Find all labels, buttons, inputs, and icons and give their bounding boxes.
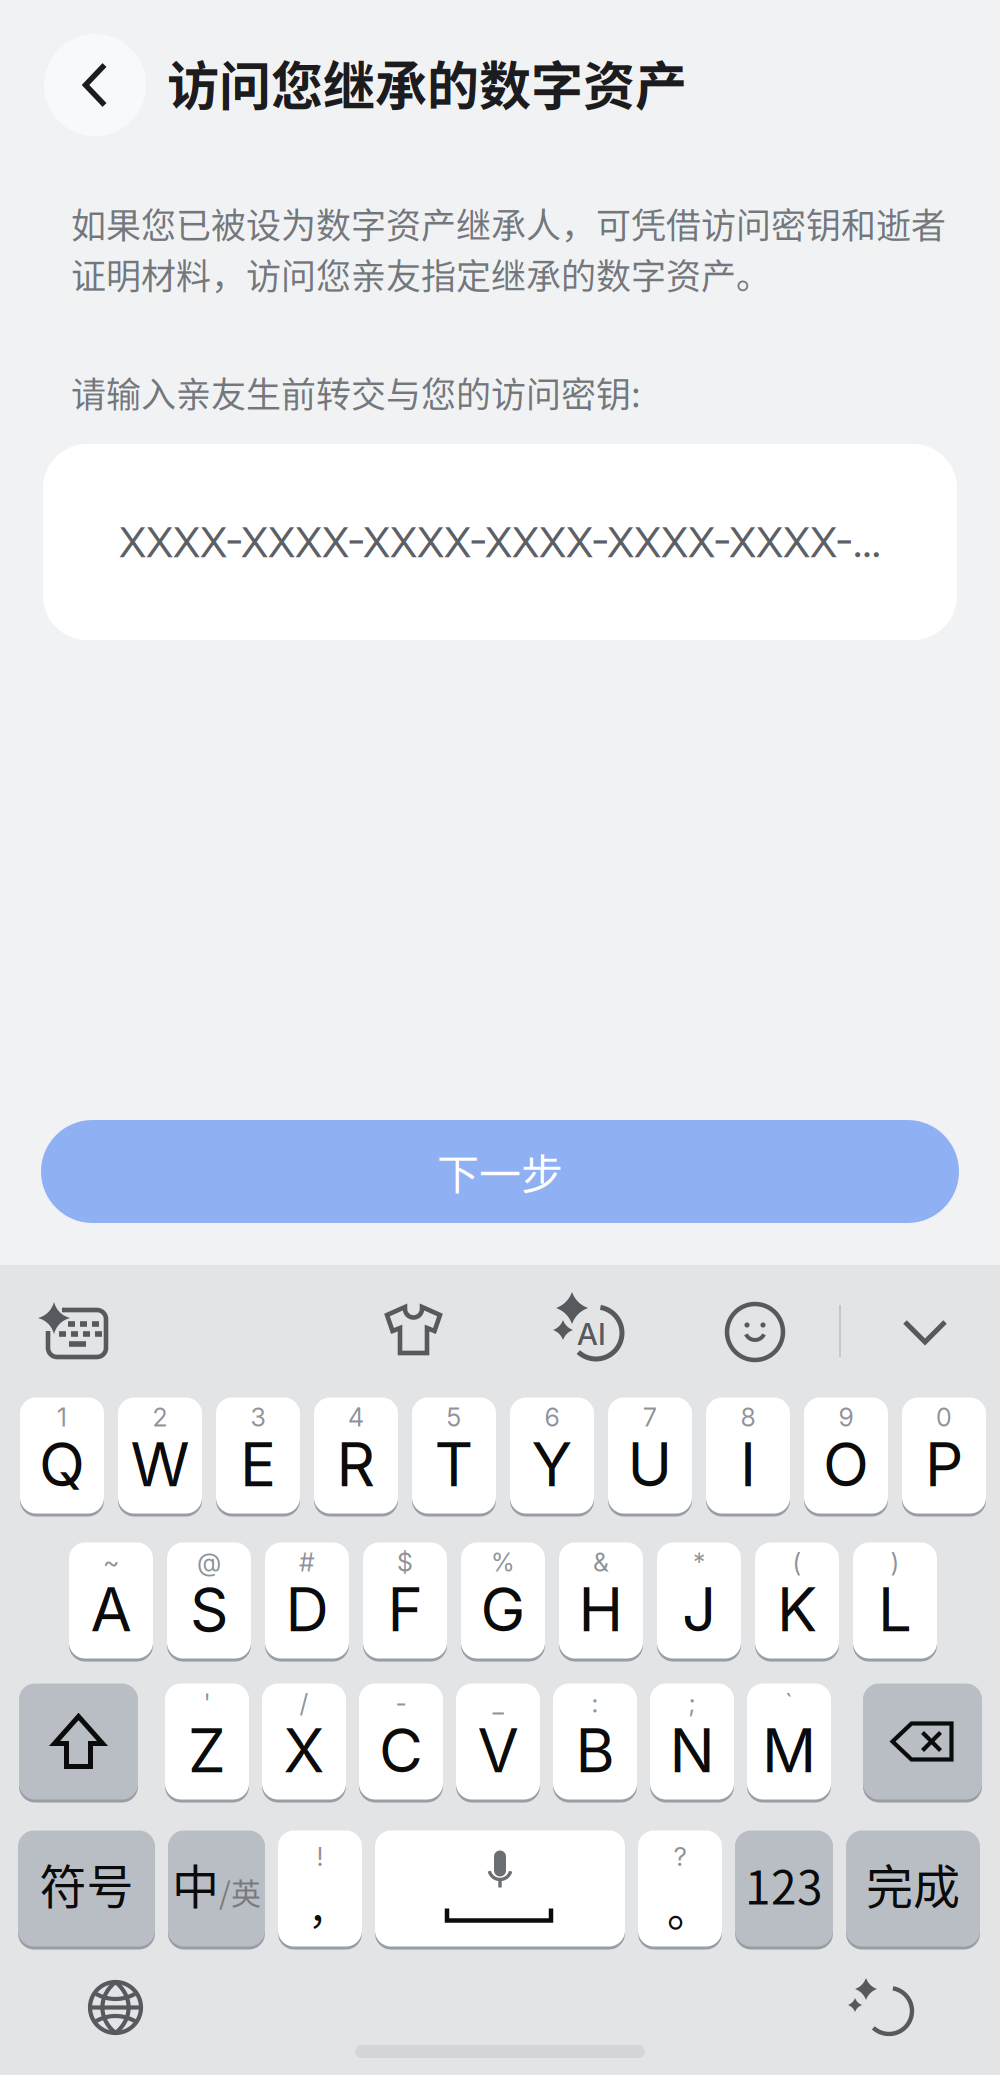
staticText: ! [316,1841,323,1872]
button[interactable]: ; [650,1682,734,1801]
staticText: ? [673,1841,686,1872]
staticText: 1 [57,1402,67,1433]
staticText: 8 [740,1402,755,1433]
staticText: W [130,1428,189,1501]
button[interactable]: 5 [412,1396,496,1515]
button[interactable]: * [657,1541,741,1660]
staticText: XXXX-XXXX-XXXX-XXXX-XXXX-XXXX-… [119,517,881,567]
staticText: D [285,1573,328,1646]
button[interactable]: Hide keyboard [902,1314,948,1350]
button[interactable] [375,1829,625,1948]
button[interactable]: 0 [902,1396,986,1515]
staticText: 123 [745,1851,823,1918]
staticText: 访问您继承的数字资产 [167,45,687,120]
button[interactable]: ( [755,1541,839,1660]
staticText: B [575,1714,614,1787]
button[interactable]: 4 [314,1396,398,1515]
button[interactable]: Emoji [727,1304,783,1360]
button[interactable]: 9 [804,1396,888,1515]
staticText: - [395,1688,406,1719]
button[interactable]: : [553,1682,637,1801]
staticText: / [299,1688,308,1719]
staticText: 0 [936,1402,952,1433]
button[interactable]: ~ [69,1541,153,1660]
button[interactable]: 1 [20,1396,104,1515]
staticText: G [480,1573,525,1646]
staticText: _ [492,1688,503,1719]
button[interactable]: AI suggestions [852,1983,916,2039]
staticText: % [491,1547,515,1578]
staticText: ~ [103,1547,119,1578]
staticText: ) [890,1547,899,1578]
staticText: T [434,1428,473,1501]
button[interactable]: 符号 [18,1829,155,1948]
button[interactable]: ! [278,1829,362,1948]
button[interactable]: Smart keyboard [34,1301,110,1361]
button[interactable]: $ [363,1541,447,1660]
staticText: P [925,1428,963,1501]
button[interactable]: 下一步 [41,1120,959,1223]
staticText: 请输入亲友生前转交与您的访问密钥: [71,367,641,418]
staticText: Z [188,1714,226,1787]
button[interactable]: 7 [608,1396,692,1515]
button[interactable]: 8 [706,1396,790,1515]
button[interactable]: # [265,1541,349,1660]
staticText: X [283,1714,324,1787]
button[interactable]: _ [456,1682,540,1801]
button[interactable] [19,1682,138,1801]
staticText: 5 [446,1402,461,1433]
button[interactable]: - [359,1682,443,1801]
staticText: ; [688,1688,695,1719]
button[interactable]: @ [167,1541,251,1660]
staticText: H [578,1573,623,1646]
staticText: M [762,1714,816,1787]
button[interactable]: ? [638,1829,722,1948]
staticText: 3 [250,1402,265,1433]
staticText: 9 [838,1402,853,1433]
staticText: F [387,1573,422,1646]
staticText: O [823,1428,869,1501]
button[interactable]: Stickers [383,1303,444,1357]
staticText: C [379,1714,423,1787]
button[interactable]: % [461,1541,545,1660]
staticText: 下一步 [437,1141,563,1202]
staticText: ' [203,1688,210,1719]
button[interactable]: 123 [735,1829,833,1948]
staticText: /英 [219,1870,261,1913]
button[interactable]: AI [552,1293,628,1365]
button[interactable]: 2 [118,1396,202,1515]
staticText: J [682,1573,716,1646]
staticText: & [593,1547,609,1578]
staticText: 4 [348,1402,364,1433]
staticText: E [240,1428,276,1501]
staticText: I [740,1428,756,1501]
button[interactable]: 完成 [846,1829,980,1948]
button[interactable]: ` [747,1682,831,1801]
staticText: V [477,1714,518,1787]
button[interactable]: ' [165,1682,249,1801]
staticText: 中 [172,1849,219,1918]
button[interactable]: Switch language [90,1982,141,2033]
button[interactable] [863,1682,982,1801]
staticText: ` [785,1688,793,1719]
staticText: S [190,1573,228,1646]
staticText: R [336,1428,375,1501]
button[interactable]: ) [853,1541,937,1660]
staticText: ( [792,1547,801,1578]
staticText: U [627,1428,672,1501]
staticText: AI [577,1316,606,1352]
button[interactable]: 中 [168,1829,265,1948]
button[interactable]: / [262,1682,346,1801]
staticText: Q [39,1428,85,1501]
staticText: 6 [544,1402,559,1433]
staticText: # [299,1547,315,1578]
button[interactable]: Back [44,34,146,136]
staticText: 完成 [866,1849,960,1918]
staticText: 符号 [39,1849,133,1918]
staticText: L [878,1573,912,1646]
button[interactable]: & [559,1541,643,1660]
staticText: ， [308,1877,348,1935]
button[interactable]: 6 [510,1396,594,1515]
staticText: $ [397,1547,413,1578]
button[interactable]: 3 [216,1396,300,1515]
